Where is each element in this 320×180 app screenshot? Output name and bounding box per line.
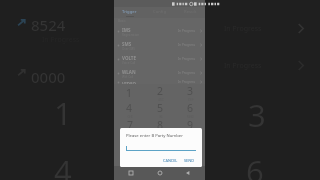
staticText: 5 — [157, 101, 164, 115]
staticText: 9 — [187, 118, 194, 132]
button[interactable]: Trigger — [114, 7, 145, 18]
staticText: SEND — [184, 158, 194, 163]
button[interactable]: SEND — [182, 156, 196, 165]
staticText: VOLTE — [122, 55, 136, 61]
button[interactable]: VOLTE — [114, 52, 205, 66]
staticText: Trigger — [122, 9, 137, 15]
button[interactable]: SMS — [114, 38, 205, 52]
staticText: In Progress — [178, 80, 196, 84]
staticText: 6 — [187, 101, 194, 115]
staticText: SMS — [122, 41, 132, 47]
button[interactable]: VIDEO — [114, 80, 205, 84]
staticText: CANCEL — [163, 158, 178, 163]
staticText: Please enter B Party Number — [126, 133, 183, 139]
staticText: In Progress — [178, 71, 196, 75]
staticText: 8524 — [31, 15, 66, 35]
staticText: 3 — [187, 84, 194, 98]
staticText: In Progress — [178, 43, 196, 47]
staticText: 4 — [126, 101, 133, 115]
button[interactable]: Home — [149, 166, 171, 180]
button[interactable]: Back — [177, 166, 199, 180]
button[interactable]: 9 — [175, 118, 205, 135]
button[interactable]: WLAN — [114, 66, 205, 80]
staticText: 1 — [54, 92, 72, 134]
staticText: 4 — [54, 150, 72, 180]
staticText: 1 — [126, 86, 133, 100]
staticText: 0000 — [31, 67, 66, 87]
staticText: WLAN — [122, 69, 136, 75]
button[interactable]: IMS — [114, 24, 205, 38]
staticText: 3 — [248, 94, 266, 136]
staticText: 6 — [246, 150, 264, 180]
staticText: In Progress — [178, 29, 196, 33]
staticText: 7 — [127, 118, 134, 132]
staticText: 2 — [157, 84, 164, 98]
staticText: PQRS — [126, 132, 134, 135]
staticText: 8 — [157, 118, 164, 132]
staticText: TUV — [158, 132, 164, 135]
button[interactable]: 8 — [145, 118, 175, 135]
staticText: VIDEO — [122, 81, 137, 85]
staticText: IMS — [122, 27, 131, 33]
button[interactable]: Recent apps — [120, 166, 142, 180]
staticText: In Progress — [178, 57, 196, 61]
button[interactable]: 7 — [114, 118, 145, 135]
button[interactable]: CANCEL — [161, 156, 180, 165]
